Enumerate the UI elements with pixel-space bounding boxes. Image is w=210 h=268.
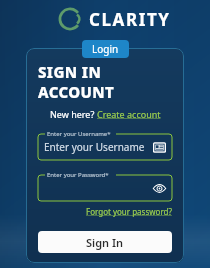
staticText: SIGN IN ACCOUNT	[38, 62, 172, 102]
button[interactable]: Login	[82, 40, 129, 58]
staticText: Forgot your password?	[86, 206, 172, 217]
staticText: Enter your Password*	[47, 171, 109, 179]
button[interactable]: Enter your Username	[38, 134, 172, 160]
staticText: CLARITY	[89, 8, 171, 31]
button[interactable]: Show password	[38, 175, 172, 201]
button[interactable]: Create account	[97, 108, 161, 120]
staticText: New here?	[50, 108, 97, 120]
staticText: Login	[92, 42, 119, 56]
staticText: Sign In	[86, 235, 124, 250]
staticText: Create account	[97, 108, 161, 120]
button[interactable]: Forgot your password?	[86, 206, 172, 217]
staticText: Enter your Username*	[47, 130, 111, 138]
button[interactable]: Clarity logo	[57, 6, 171, 32]
button[interactable]: Sign In	[38, 231, 172, 253]
staticText: Enter your Username	[44, 140, 153, 154]
button[interactable]: Show password	[153, 182, 166, 195]
button[interactable]: Username	[153, 141, 166, 154]
